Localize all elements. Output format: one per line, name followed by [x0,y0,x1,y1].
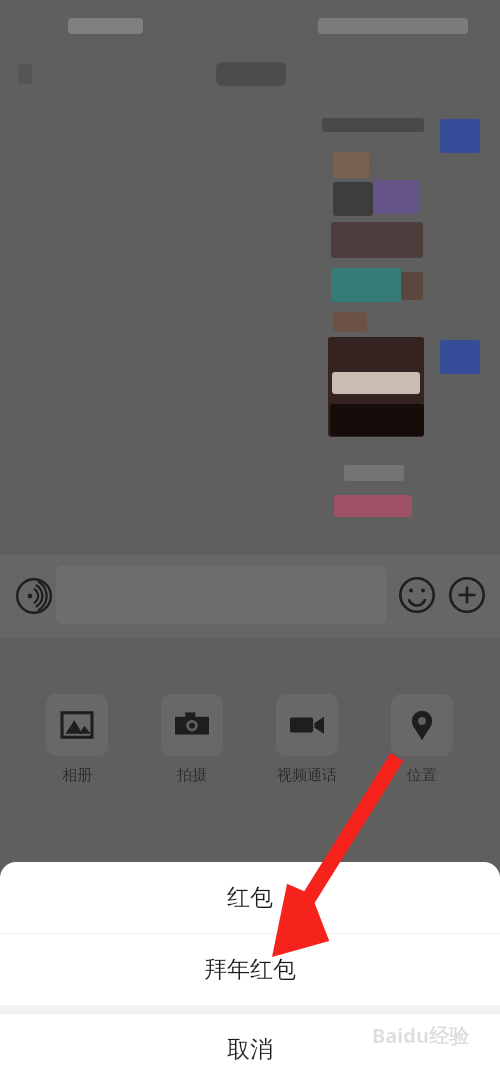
staticText: Baidu经验 [372,1022,469,1049]
button[interactable]: Emoji [394,572,440,618]
button[interactable]: 取消 [0,1014,500,1084]
button[interactable]: 视频通话 [261,694,353,798]
staticText: 取消 [227,1035,273,1064]
button[interactable]: More [444,572,490,618]
staticText: 拍摄 [177,766,207,785]
button[interactable]: 拍摄 [146,694,238,798]
staticText: 相册 [62,766,92,785]
staticText: 位置 [407,766,437,785]
button[interactable]: 拜年红包 [0,934,500,1005]
button[interactable]: 位置 [376,694,468,798]
staticText: 红包 [227,883,273,912]
button[interactable]: 红包 [0,862,500,933]
button[interactable]: 相册 [31,694,123,798]
staticText: 视频通话 [277,766,337,785]
staticText: 拜年红包 [204,955,296,984]
button[interactable]: Voice input [10,572,58,620]
